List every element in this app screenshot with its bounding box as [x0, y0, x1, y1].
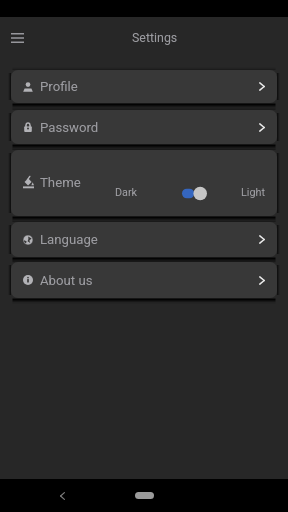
staticText: Dark: [115, 186, 138, 199]
button[interactable]: Back: [50, 484, 74, 508]
staticText: About us: [40, 273, 93, 288]
staticText: Password: [40, 120, 99, 135]
staticText: Profile: [40, 79, 78, 94]
button[interactable]: About us: [11, 262, 277, 298]
staticText: Language: [40, 232, 98, 247]
button[interactable]: Toggle theme: [179, 183, 207, 204]
button[interactable]: Password: [11, 110, 277, 144]
staticText: Theme: [40, 175, 81, 190]
button[interactable]: Theme: [23, 175, 81, 190]
staticText: Settings: [132, 30, 178, 45]
button[interactable]: Language: [11, 222, 277, 257]
staticText: Light: [241, 186, 265, 199]
button[interactable]: Menu: [3, 24, 31, 52]
button[interactable]: Profile: [11, 70, 277, 103]
